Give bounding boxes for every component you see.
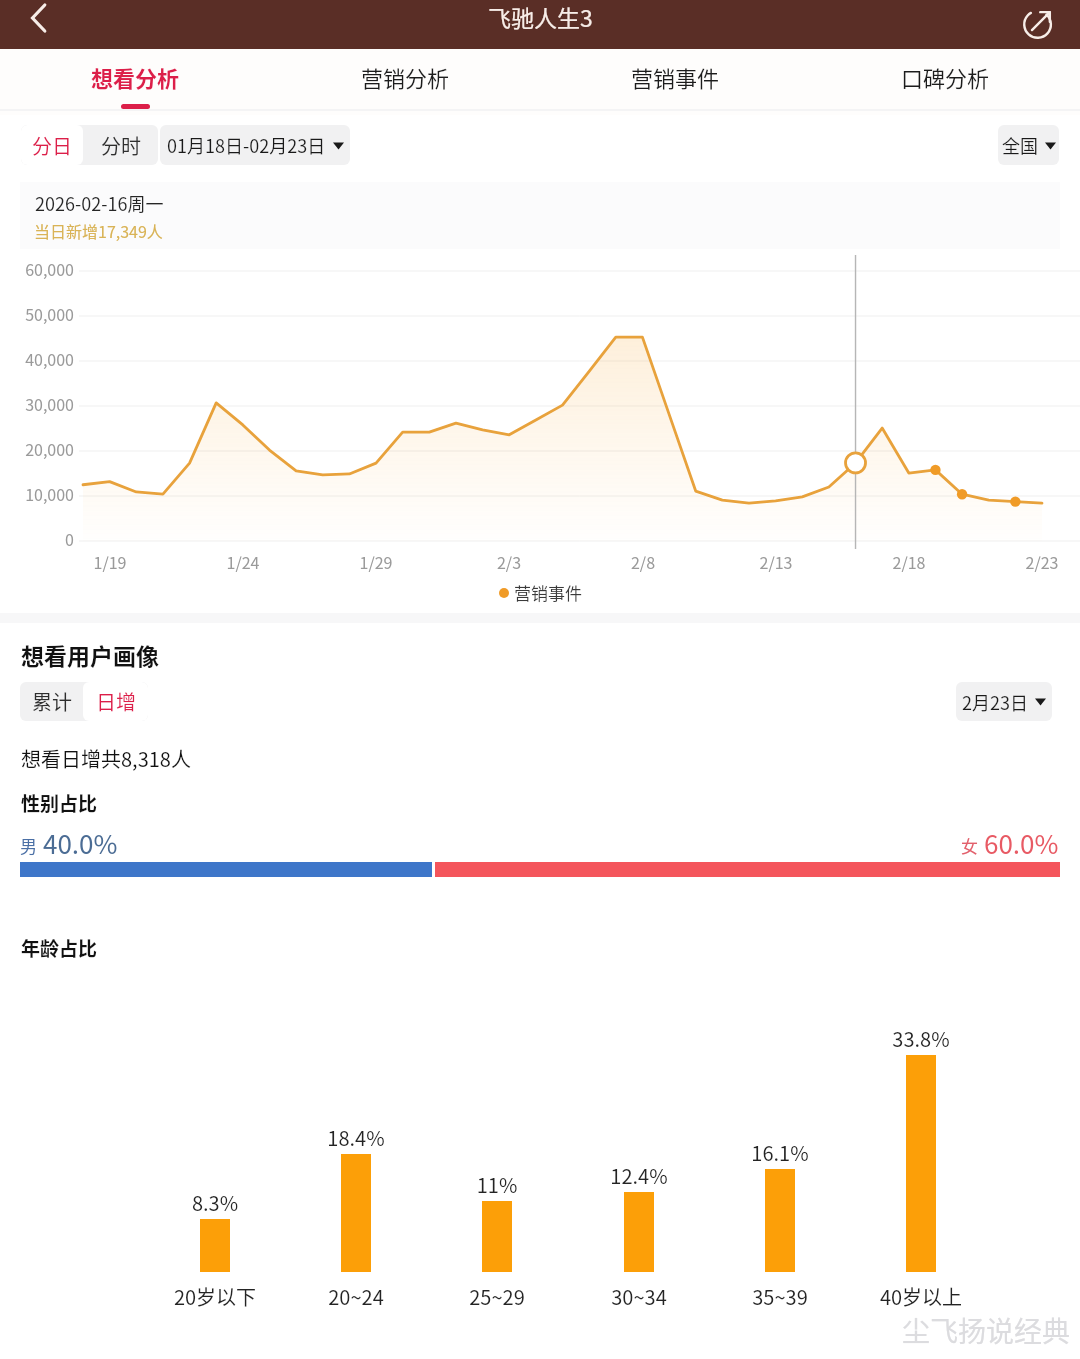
button[interactable]: 分日 (21, 125, 83, 165)
staticText: 18.4% (276, 1123, 436, 1152)
button[interactable]: Share (998, 0, 1080, 49)
staticText: 营销事件 (514, 580, 582, 605)
staticText: 20,000 (0, 437, 74, 460)
staticText: 0 (0, 527, 74, 550)
staticText: 日增 (96, 687, 136, 716)
staticText: 飞驰人生3 (488, 0, 593, 33)
button[interactable]: 口碑分析 (810, 49, 1080, 115)
button[interactable]: 01月18日-02月23日 (160, 125, 350, 165)
staticText: 12.4% (559, 1161, 719, 1190)
staticText: 60.0% (984, 824, 1059, 862)
staticText: 25~29 (412, 1282, 582, 1311)
staticText: 40.0% (43, 824, 118, 862)
button[interactable]: 分时 (83, 125, 158, 165)
staticText: 20岁以下 (130, 1282, 300, 1311)
staticText: 40岁以上 (836, 1282, 1006, 1311)
staticText: 性别占比 (21, 789, 98, 817)
staticText: 11% (417, 1170, 577, 1199)
staticText: 想看用户画像 (21, 638, 159, 671)
staticText: 分时 (101, 131, 141, 160)
staticText: 女 (961, 833, 978, 858)
button[interactable]: Back (0, 0, 82, 49)
staticText: 全国 (1002, 132, 1038, 158)
staticText: 1/24 (203, 550, 283, 573)
staticText: 35~39 (695, 1282, 865, 1311)
staticText: 累计 (32, 687, 72, 716)
staticText: 30~34 (554, 1282, 724, 1311)
button[interactable]: 累计 (20, 682, 83, 721)
staticText: 2月23日 (962, 689, 1028, 715)
staticText: 当日新增17,349人 (34, 219, 163, 242)
staticText: 1/19 (70, 550, 150, 573)
staticText: 20~24 (271, 1282, 441, 1311)
staticText: 2/23 (1002, 550, 1080, 573)
staticText: 想看日增共8,318人 (21, 744, 191, 773)
staticText: 30,000 (0, 392, 74, 415)
staticText: 40,000 (0, 347, 74, 370)
staticText: 尘飞扬说经典 (902, 1310, 1071, 1351)
staticText: 想看分析 (91, 61, 180, 93)
staticText: 2/13 (736, 550, 816, 573)
button[interactable]: 营销分析 (270, 49, 540, 115)
button[interactable]: 营销事件 (540, 49, 810, 115)
staticText: 50,000 (0, 302, 74, 325)
staticText: 2/18 (869, 550, 949, 573)
button[interactable]: 全国 (998, 125, 1059, 165)
staticText: 年龄占比 (21, 934, 98, 962)
button[interactable]: 想看分析 (0, 49, 270, 115)
staticText: 60,000 (0, 257, 74, 280)
staticText: 8.3% (135, 1188, 295, 1217)
staticText: 男 (20, 833, 37, 858)
staticText: 分日 (32, 131, 72, 160)
button[interactable]: 日增 (83, 682, 148, 721)
staticText: 33.8% (841, 1024, 1001, 1053)
staticText: 2026-02-16周一 (35, 190, 164, 216)
staticText: 营销分析 (361, 61, 450, 93)
staticText: 16.1% (700, 1138, 860, 1167)
staticText: 1/29 (336, 550, 416, 573)
staticText: 2/8 (603, 550, 683, 573)
staticText: 2/3 (469, 550, 549, 573)
staticText: 营销事件 (631, 61, 720, 93)
button[interactable]: 2月23日 (956, 682, 1052, 721)
staticText: 口碑分析 (901, 61, 990, 93)
staticText: 01月18日-02月23日 (167, 132, 326, 158)
staticText: 10,000 (0, 482, 74, 505)
